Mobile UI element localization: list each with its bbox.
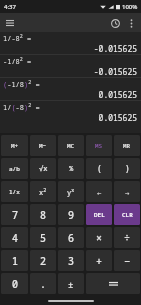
button[interactable]: + [86, 250, 112, 271]
button[interactable]: M+ [1, 135, 28, 156]
button[interactable]: ± [58, 273, 84, 294]
staticText: 1 [12, 254, 18, 268]
staticText: 5 [40, 231, 46, 245]
staticText: − [124, 254, 130, 268]
staticText: 1/-82 = [3, 33, 32, 43]
staticText: 9 [68, 208, 74, 222]
button[interactable]: 9 [58, 204, 84, 225]
button[interactable]: 0 [1, 273, 28, 294]
button[interactable]: 6 [58, 227, 84, 248]
staticText: 0.015625 [98, 89, 137, 100]
button[interactable]: a/b [1, 158, 28, 179]
button[interactable]: 2 [30, 250, 56, 271]
button[interactable]: CLR [114, 204, 140, 225]
button[interactable]: ÷ [114, 227, 140, 248]
button[interactable] [86, 273, 140, 294]
button[interactable]: More options [123, 15, 139, 31]
staticText: ± [68, 278, 74, 290]
button[interactable]: 7 [1, 204, 28, 225]
button[interactable]: . [30, 273, 56, 294]
button[interactable]: ← [86, 181, 112, 202]
button[interactable]: 1/x [1, 181, 28, 202]
staticText: √x [39, 164, 48, 174]
staticText: 7 [12, 208, 18, 222]
staticText: 8 [40, 208, 46, 222]
staticText: 0 [12, 277, 18, 291]
staticText: DEL [94, 211, 105, 219]
staticText: ( [97, 163, 102, 174]
button[interactable]: yx [58, 181, 84, 202]
button[interactable]: 8 [30, 204, 56, 225]
button[interactable]: ) [114, 158, 140, 179]
button[interactable]: 1 [1, 250, 28, 271]
staticText: % [69, 164, 74, 174]
button[interactable]: → [114, 181, 140, 202]
staticText: . [40, 277, 46, 291]
button[interactable]: × [86, 227, 112, 248]
staticText: 2 [40, 254, 46, 268]
button[interactable]: MR [114, 135, 140, 156]
button[interactable]: M− [30, 135, 56, 156]
staticText: 1/x [9, 188, 20, 196]
staticText: -0.015625 [93, 66, 137, 77]
staticText: 0.015625 [98, 112, 137, 123]
button[interactable]: − [114, 250, 140, 271]
button[interactable]: DEL [86, 204, 112, 225]
staticText: ÷ [124, 231, 130, 245]
staticText: yx [67, 187, 75, 197]
staticText: MC [67, 142, 75, 150]
button[interactable]: History [107, 15, 123, 31]
staticText: × [96, 231, 102, 245]
staticText: MS [95, 142, 103, 150]
button[interactable]: 3 [58, 250, 84, 271]
staticText: + [96, 254, 102, 268]
staticText: (-1/8)2 = [3, 79, 40, 89]
button[interactable]: 5 [30, 227, 56, 248]
staticText: -1/82 = [3, 56, 32, 66]
staticText: -0.015625 [93, 43, 137, 54]
staticText: ) [125, 163, 130, 174]
button[interactable]: √x [30, 158, 56, 179]
button[interactable]: ( [86, 158, 112, 179]
staticText: 4:37 [4, 3, 16, 11]
staticText: M− [39, 142, 47, 150]
staticText: 1/(-8)2 = [3, 102, 40, 112]
staticText: 3 [68, 254, 74, 268]
button[interactable]: MS [86, 135, 112, 156]
button[interactable]: x2 [30, 181, 56, 202]
button[interactable]: % [58, 158, 84, 179]
button[interactable]: Menu [3, 16, 17, 30]
staticText: MR [123, 142, 131, 150]
staticText: M+ [11, 142, 19, 150]
button[interactable]: 4 [1, 227, 28, 248]
staticText: x2 [39, 187, 47, 197]
staticText: ← [97, 186, 102, 197]
button[interactable]: MC [58, 135, 84, 156]
staticText: 100% [122, 3, 138, 11]
staticText: CLR [122, 211, 133, 219]
staticText: → [125, 186, 130, 197]
staticText: 4 [12, 231, 18, 245]
staticText: a/b [9, 165, 20, 173]
staticText: 6 [68, 231, 74, 245]
